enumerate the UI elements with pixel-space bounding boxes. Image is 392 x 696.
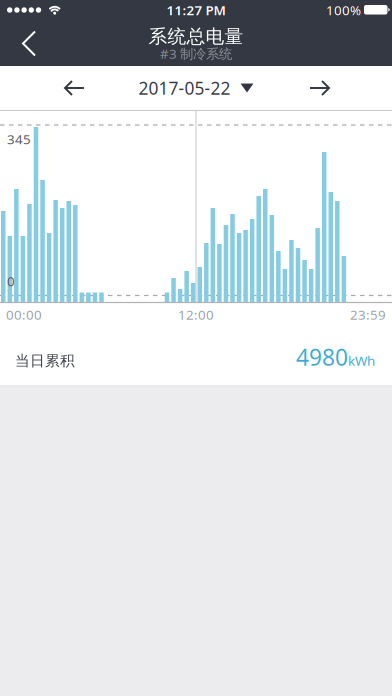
button[interactable]: Next day (299, 70, 340, 106)
staticText: 23:59 (350, 306, 386, 323)
staticText: #3 制冷系统 (160, 45, 232, 62)
staticText: 2017-05-22 (138, 76, 230, 99)
staticText: 12:00 (178, 306, 214, 323)
staticText: 100% (326, 1, 361, 19)
staticText: 4980 (296, 342, 348, 372)
staticText: 11:27 PM (166, 1, 225, 19)
button[interactable]: Back (0, 20, 50, 66)
staticText: 00:00 (6, 306, 42, 323)
staticText: 当日累积 (15, 352, 75, 370)
button[interactable]: Select date (138, 76, 253, 99)
staticText: 345 (7, 130, 31, 148)
staticText: 0 (7, 272, 15, 290)
button[interactable]: Previous day (54, 70, 95, 106)
staticText: 系统总电量 (148, 25, 243, 48)
staticText: kWh (348, 352, 375, 369)
